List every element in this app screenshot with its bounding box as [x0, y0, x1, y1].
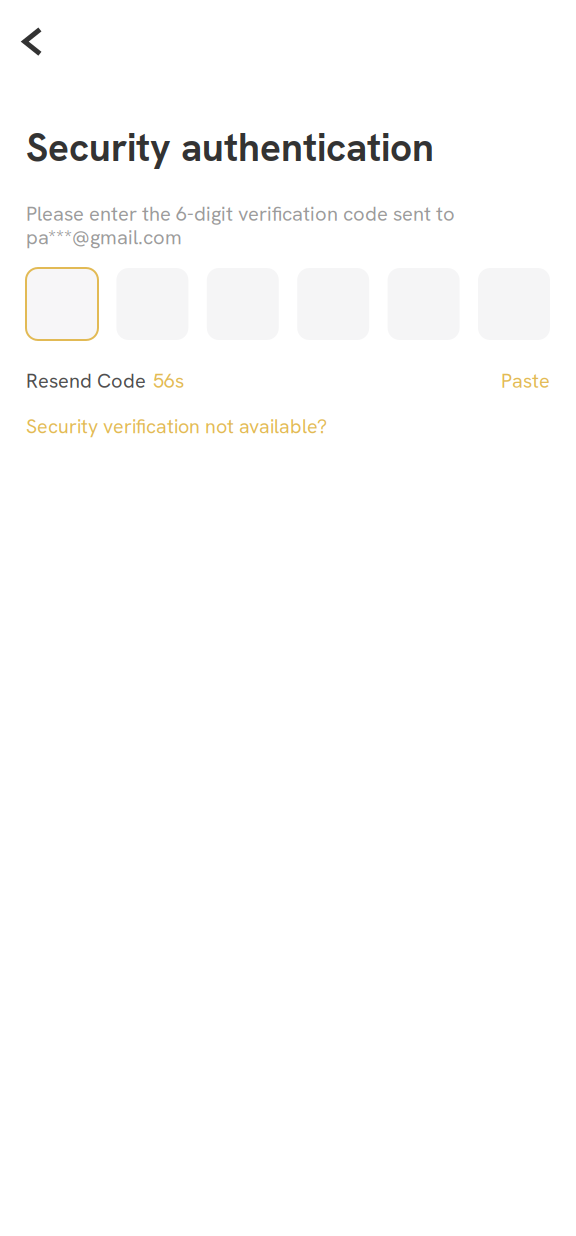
button[interactable]: Security verification not available? — [26, 413, 327, 439]
button[interactable]: Paste — [501, 368, 550, 394]
staticText: pa***@gmail.com — [26, 224, 182, 250]
staticText: Security authentication — [26, 122, 434, 173]
staticText: Please enter the 6-digit verification co… — [26, 201, 455, 227]
staticText: Resend Code — [26, 368, 146, 394]
button[interactable]: Resend Code — [26, 368, 184, 394]
staticText: 56s — [153, 368, 184, 394]
button[interactable]: Back — [7, 17, 57, 67]
staticText: Security verification not available? — [26, 413, 327, 439]
staticText: Paste — [501, 368, 550, 394]
